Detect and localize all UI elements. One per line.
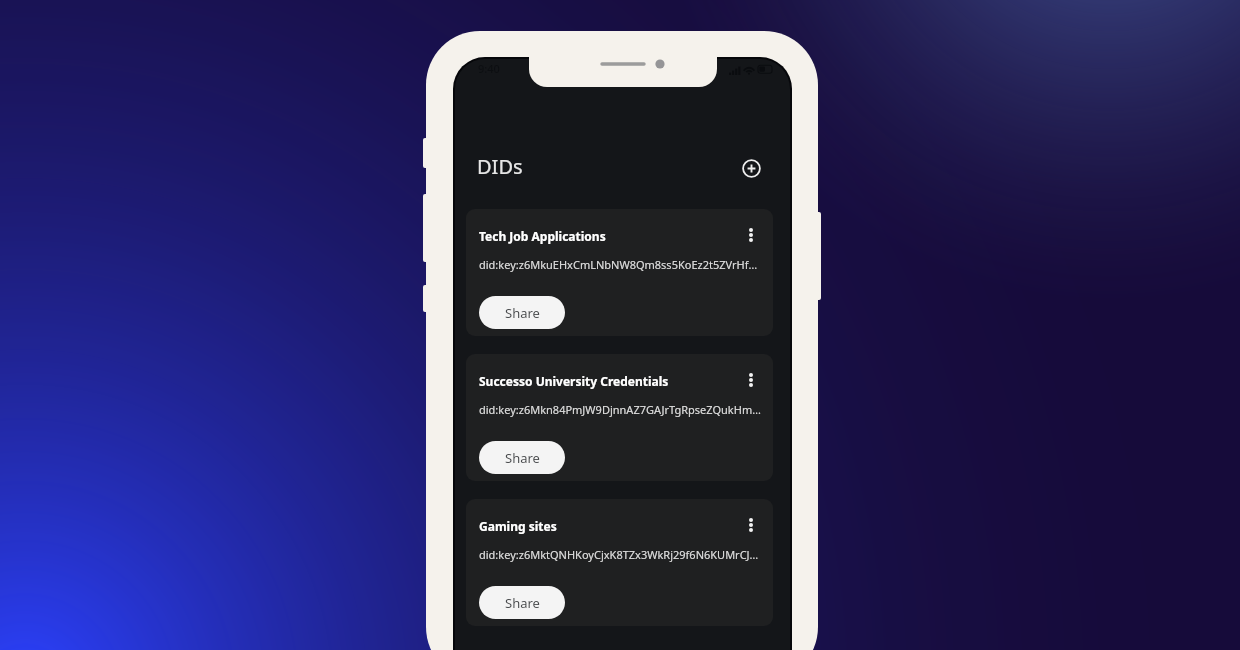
staticText: did:key:z6Mkn84PmJW9DjnnAZ7GAJrTgRpseZQu… bbox=[479, 402, 761, 417]
button[interactable]: More options bbox=[740, 369, 762, 391]
staticText: Share bbox=[505, 449, 540, 467]
button[interactable]: Successo University Credentials bbox=[466, 354, 773, 481]
button[interactable]: More options bbox=[740, 224, 762, 246]
button[interactable]: Share bbox=[479, 586, 565, 619]
staticText: Share bbox=[505, 594, 540, 612]
staticText: Successo University Credentials bbox=[479, 373, 669, 389]
button[interactable]: Gaming sites bbox=[466, 499, 773, 626]
staticText: DIDs bbox=[477, 153, 523, 180]
button[interactable]: More options bbox=[740, 514, 762, 536]
staticText: did:key:z6MktQNHKoyCjxK8TZx3WkRj29f6N6KU… bbox=[479, 547, 759, 562]
staticText: Share bbox=[505, 304, 540, 322]
button[interactable]: Add DID bbox=[737, 154, 765, 182]
staticText: Gaming sites bbox=[479, 518, 557, 534]
staticText: did:key:z6MkuEHxCmLNbNW8Qm8ss5KoEz2t5ZVr… bbox=[479, 257, 761, 272]
button[interactable]: Tech Job Applications bbox=[466, 209, 773, 336]
button[interactable]: Share bbox=[479, 296, 565, 329]
button[interactable]: Share bbox=[479, 441, 565, 474]
staticText: Tech Job Applications bbox=[479, 228, 606, 244]
